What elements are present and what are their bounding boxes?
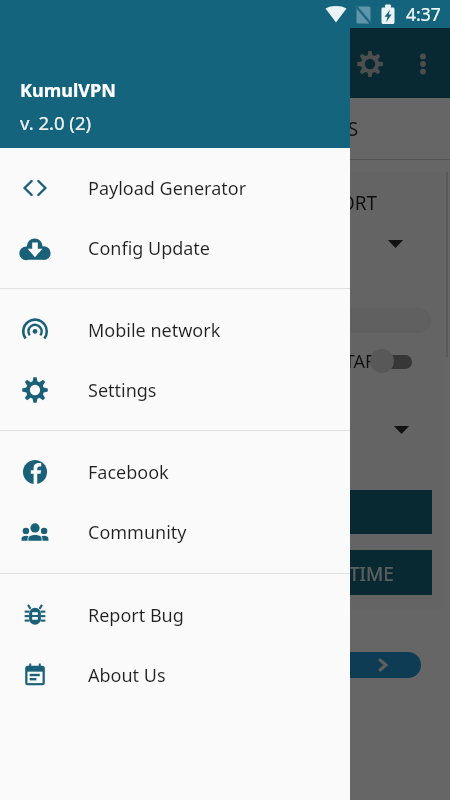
staticText: Community xyxy=(88,520,187,545)
button[interactable]: Action xyxy=(7,490,432,534)
button[interactable]: More options xyxy=(400,41,446,87)
button[interactable]: Connect xyxy=(120,652,421,678)
staticText: Payload Generator xyxy=(88,176,247,201)
button[interactable]: Settings xyxy=(347,41,393,87)
staticText: Report Bug xyxy=(88,603,184,628)
button[interactable]: Facebook xyxy=(0,442,350,502)
staticText: SERVER SETTINGS xyxy=(199,116,359,142)
staticText: SHOW LOG ON STARTUP xyxy=(203,349,411,374)
staticText: v. 2.0 (2) xyxy=(20,110,92,135)
staticText: CHECK ACCOUNT TIME xyxy=(190,561,394,587)
staticText: Config Update xyxy=(88,236,211,261)
button[interactable]: Settings xyxy=(0,360,350,420)
staticText: Facebook xyxy=(88,460,169,485)
button[interactable]: Payload Generator xyxy=(0,158,350,218)
button[interactable]: Report Bug xyxy=(0,585,350,645)
staticText: About Us xyxy=(88,663,166,688)
staticText: KumulVPN xyxy=(20,78,116,103)
staticText: SERVER HOST / PORT xyxy=(190,190,378,216)
button[interactable] xyxy=(0,0,450,800)
button[interactable]: About Us xyxy=(0,645,350,705)
button[interactable]: Community xyxy=(0,502,350,562)
staticText: 4:37 xyxy=(406,2,441,26)
staticText: Settings xyxy=(88,378,157,403)
staticText: Mobile network xyxy=(88,318,221,343)
button[interactable]: CHECK ACCOUNT TIME xyxy=(7,550,432,595)
button[interactable]: Mobile network xyxy=(0,300,350,360)
button[interactable]: Config Update xyxy=(0,218,350,278)
